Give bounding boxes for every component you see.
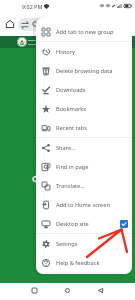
staticText: Bookmarks <box>56 105 128 113</box>
button[interactable]: Help & feedback <box>36 253 132 272</box>
button[interactable]: Add tab to new group <box>36 22 132 41</box>
staticText: Share… <box>56 144 128 152</box>
staticText: Find in page <box>56 163 128 171</box>
button[interactable]: Bookmarks <box>36 99 132 118</box>
staticText: Desktop site <box>56 220 120 228</box>
button[interactable]: Tab switcher <box>18 18 54 31</box>
button[interactable]: Translate… <box>36 176 132 195</box>
staticText: Downloads <box>56 86 128 94</box>
button[interactable]: Home <box>60 283 74 297</box>
button[interactable]: Settings <box>36 234 132 253</box>
staticText: Delete browsing data <box>56 67 128 75</box>
staticText: Recent tabs <box>56 124 128 132</box>
button[interactable]: Downloads <box>36 80 132 99</box>
button[interactable]: Recent tabs <box>36 118 132 137</box>
staticText: FEDERAL REPUBLIC <box>28 39 48 42</box>
staticText: Settings <box>56 240 128 248</box>
button[interactable]: Desktop site <box>36 214 132 233</box>
staticText: OF NIGERIA <box>28 43 41 46</box>
staticText: Translate… <box>56 182 128 190</box>
button[interactable]: Home <box>3 17 17 31</box>
staticText: Add tab to new group <box>56 28 128 36</box>
button[interactable]: Find in page <box>36 157 132 176</box>
staticText: History <box>56 48 128 56</box>
button[interactable]: History <box>36 42 132 61</box>
button[interactable]: Add to Home screen <box>36 195 132 214</box>
button[interactable]: Recents <box>27 283 41 297</box>
button[interactable]: Delete browsing data <box>36 61 132 80</box>
button[interactable]: Back <box>93 283 107 297</box>
staticText: Add to Home screen <box>56 201 128 209</box>
staticText: 9:02 PM <box>22 3 43 10</box>
staticText: Help & feedback <box>56 259 128 267</box>
button[interactable]: Share… <box>36 138 132 157</box>
